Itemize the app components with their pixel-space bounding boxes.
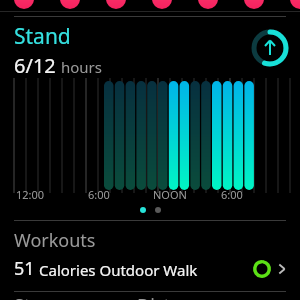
staticText: Stand bbox=[14, 22, 71, 51]
button[interactable]: Steps bbox=[0, 293, 300, 300]
staticText: Steps bbox=[14, 293, 61, 300]
staticText: 6:00 bbox=[221, 187, 243, 202]
button[interactable]: Workouts bbox=[0, 228, 300, 281]
staticText: 51 bbox=[14, 256, 35, 281]
staticText: Distance bbox=[137, 293, 210, 300]
other: Open workouts bbox=[276, 262, 290, 276]
button[interactable] bbox=[0, 78, 300, 193]
button[interactable]: Stand progress bbox=[250, 28, 290, 68]
staticText: 12:00 bbox=[16, 187, 45, 202]
staticText: Calories Outdoor Walk bbox=[39, 260, 198, 280]
staticText: 6/12 bbox=[14, 52, 56, 79]
staticText: Workouts bbox=[14, 228, 96, 253]
staticText: NOON bbox=[153, 187, 187, 202]
button[interactable]: Stand bbox=[0, 12, 300, 79]
staticText: hours bbox=[61, 57, 102, 77]
other: Workout progress bbox=[252, 259, 272, 279]
staticText: 6:00 bbox=[88, 187, 110, 202]
